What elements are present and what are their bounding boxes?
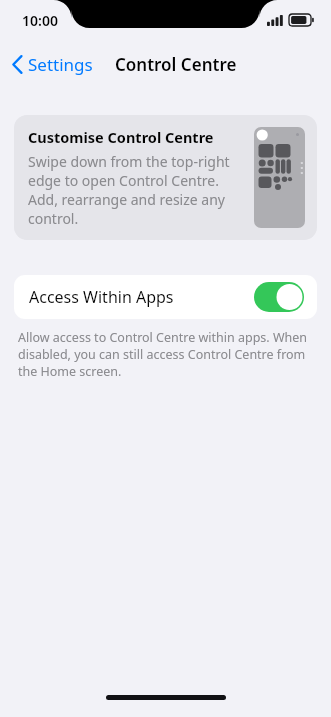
staticText: Swipe down from the top-right edge to op… bbox=[28, 152, 246, 228]
staticText: Customise Control Centre bbox=[28, 127, 214, 147]
button[interactable]: Access Within Apps bbox=[14, 275, 317, 319]
button[interactable]: Customise Control Centre bbox=[14, 115, 317, 240]
staticText: 10:00 bbox=[22, 11, 58, 30]
staticText: Allow access to Control Centre within ap… bbox=[18, 329, 313, 380]
button[interactable]: Access Within Apps toggle, on bbox=[254, 282, 304, 312]
staticText: Control Centre bbox=[115, 53, 237, 76]
staticText: Access Within Apps bbox=[29, 286, 254, 308]
button[interactable]: Settings bbox=[8, 50, 97, 79]
staticText: Settings bbox=[28, 53, 93, 76]
